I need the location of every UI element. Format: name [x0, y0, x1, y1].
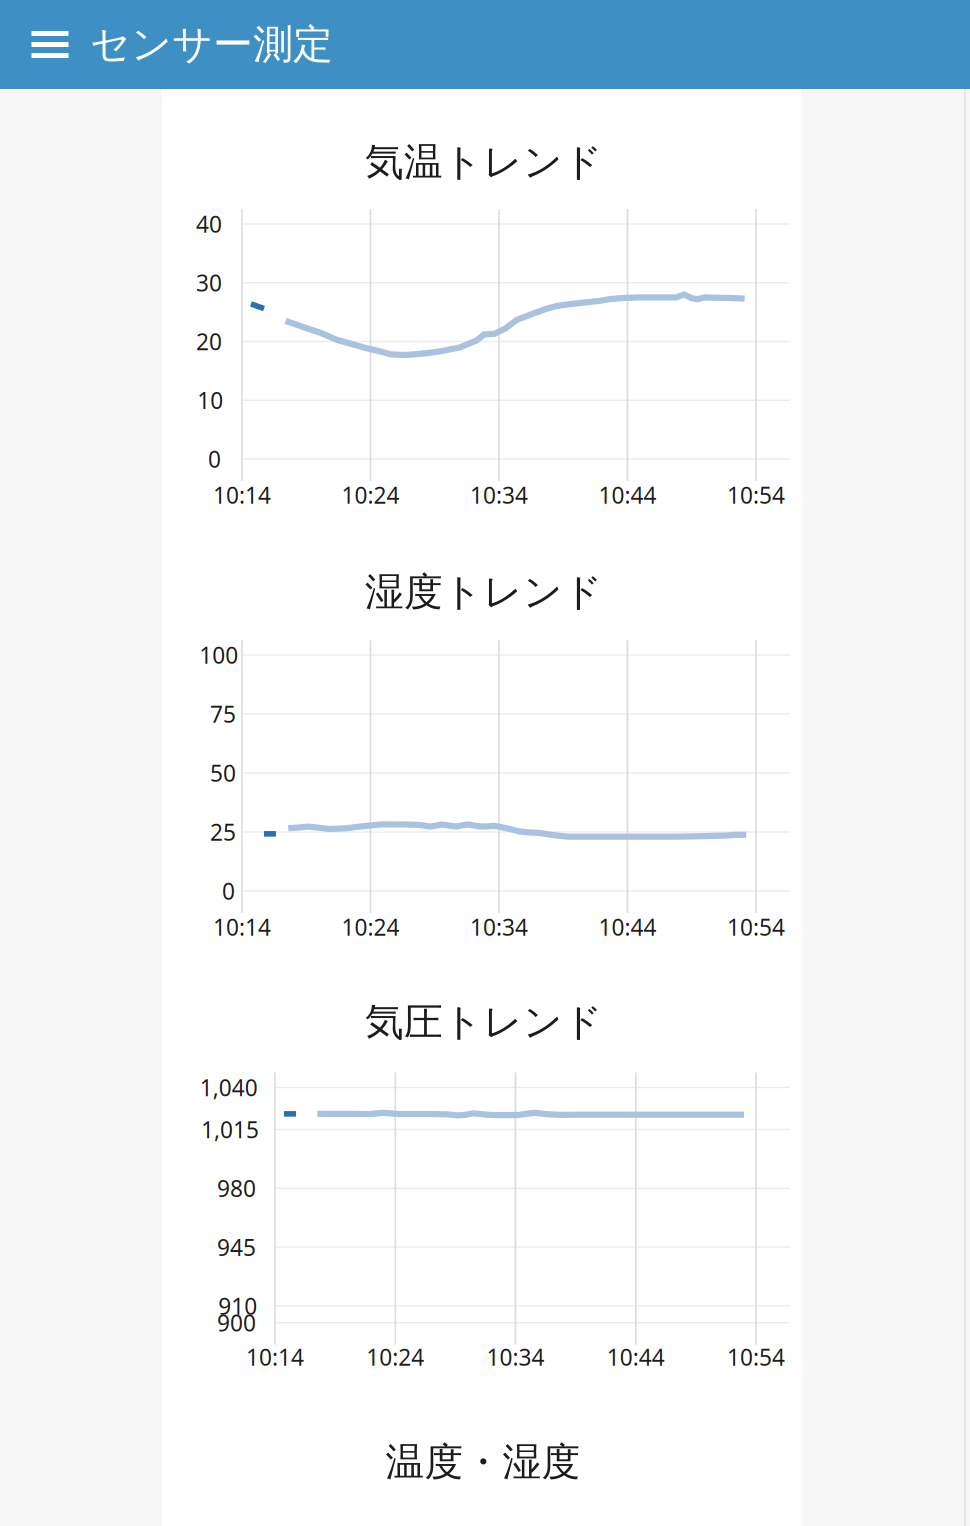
- staticText: 75: [210, 699, 236, 729]
- staticText: 30: [196, 268, 222, 298]
- staticText: 910: [218, 1291, 257, 1321]
- staticText: 10:44: [598, 480, 656, 510]
- staticText: 10:54: [727, 912, 785, 942]
- staticText: 980: [217, 1173, 256, 1203]
- staticText: 10:34: [470, 480, 528, 510]
- staticText: 10:34: [486, 1342, 544, 1372]
- staticText: 100: [199, 640, 238, 670]
- staticText: 10:14: [213, 912, 271, 942]
- staticText: 湿度トレンド: [365, 568, 603, 616]
- staticText: 10:24: [366, 1342, 424, 1372]
- staticText: 10:44: [598, 912, 656, 942]
- button[interactable]: メニュー: [10, 0, 90, 89]
- staticText: 0: [208, 444, 221, 474]
- staticText: 20: [196, 326, 222, 356]
- staticText: 10: [197, 385, 223, 415]
- staticText: 10:24: [341, 480, 399, 510]
- staticText: 気温トレンド: [365, 138, 603, 186]
- staticText: 1,040: [200, 1072, 258, 1102]
- staticText: 900: [217, 1308, 256, 1338]
- staticText: 40: [196, 209, 222, 239]
- staticText: 10:14: [213, 480, 271, 510]
- staticText: 気圧トレンド: [365, 998, 603, 1046]
- staticText: 10:34: [470, 912, 528, 942]
- staticText: 10:14: [246, 1342, 304, 1372]
- staticText: 25: [210, 817, 236, 847]
- staticText: 50: [210, 758, 236, 788]
- staticText: 1,015: [201, 1114, 259, 1144]
- staticText: 945: [217, 1232, 256, 1262]
- staticText: 温度・湿度: [385, 1438, 580, 1486]
- staticText: 10:44: [607, 1342, 665, 1372]
- staticText: 0: [222, 876, 235, 906]
- staticText: 10:24: [341, 912, 399, 942]
- staticText: 10:54: [727, 480, 785, 510]
- staticText: センサー測定: [90, 20, 333, 69]
- staticText: 10:54: [727, 1342, 785, 1372]
